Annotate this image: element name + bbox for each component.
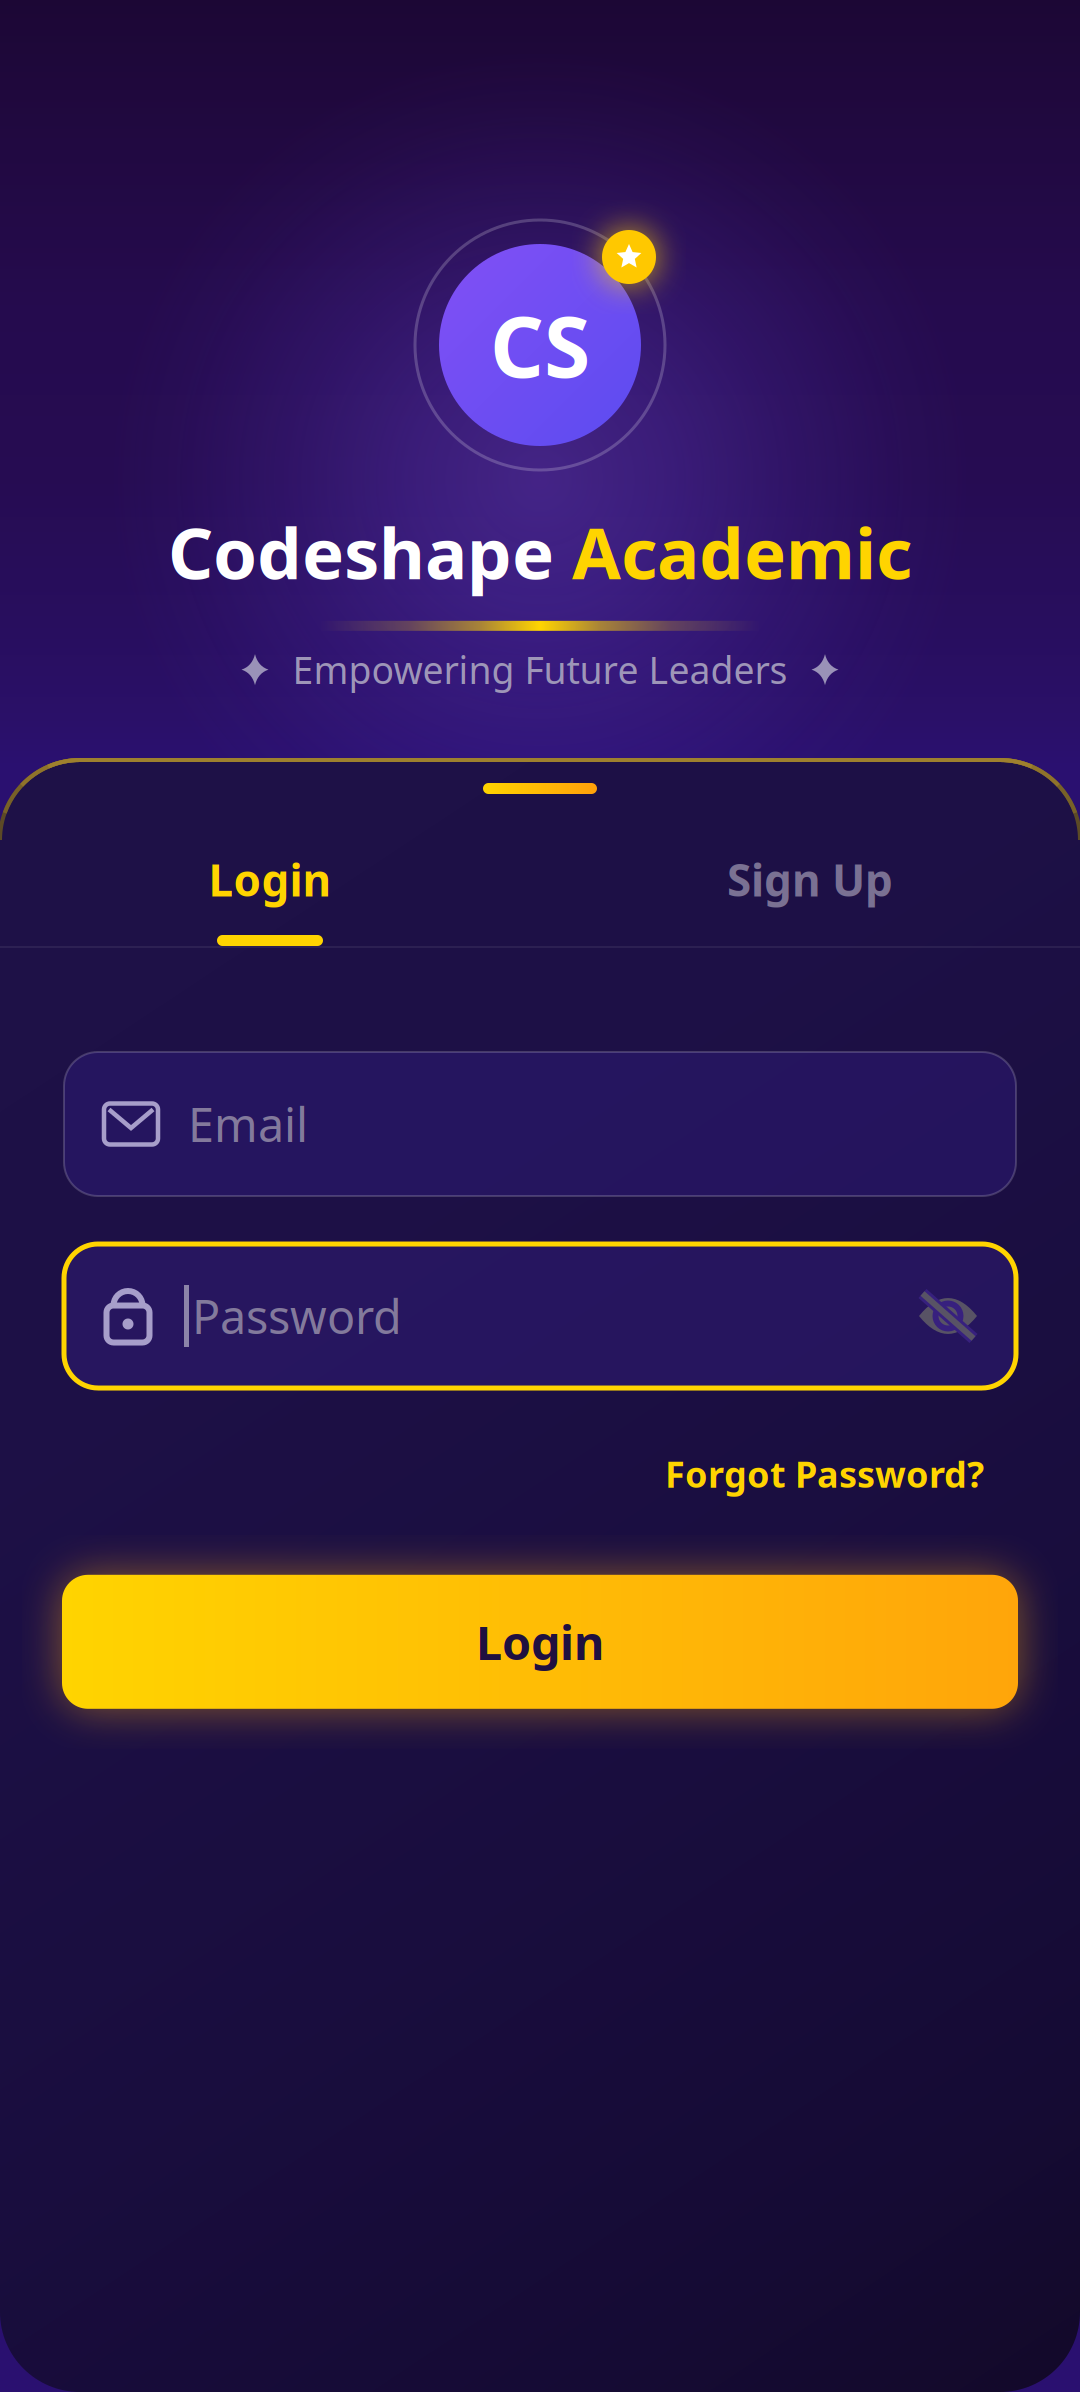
button[interactable]: Login <box>62 1575 1018 1709</box>
staticText: Empowering Future Leaders <box>292 645 787 694</box>
staticText: Email <box>188 1093 308 1155</box>
staticText: Academic <box>572 505 912 599</box>
staticText: Sign Up <box>727 850 893 909</box>
staticText: CS <box>490 289 590 401</box>
button[interactable]: Sign Up <box>540 816 1080 946</box>
button[interactable]: Forgot Password? <box>633 1432 1016 1516</box>
staticText: Codeshape <box>168 505 572 599</box>
staticText: Forgot Password? <box>665 1450 984 1498</box>
button[interactable]: Login <box>0 816 540 946</box>
staticText: Login <box>208 850 331 909</box>
staticText: Login <box>476 1611 604 1673</box>
staticText: Password <box>192 1285 402 1347</box>
